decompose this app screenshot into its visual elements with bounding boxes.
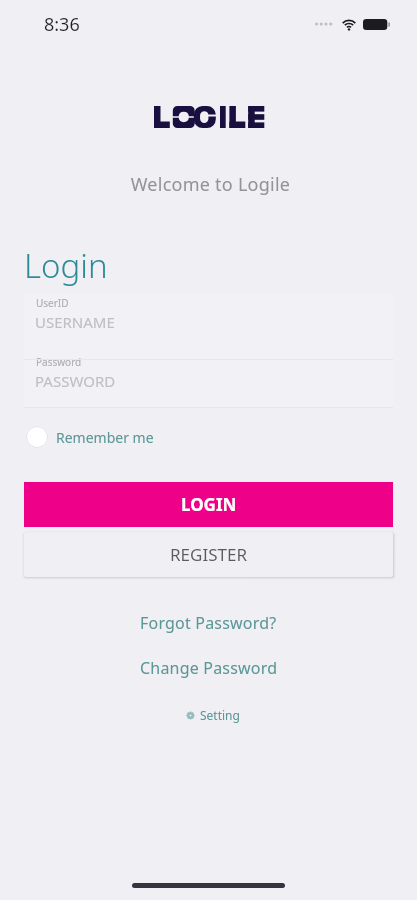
button[interactable]: UserID <box>24 294 393 353</box>
button[interactable]: LOGIN <box>24 482 393 527</box>
staticText: Login <box>24 243 108 288</box>
staticText: USERNAME <box>35 312 115 332</box>
staticText: 8:36 <box>44 12 80 37</box>
staticText: Forgot Password? <box>140 612 277 634</box>
staticText: Change Password <box>140 657 278 679</box>
button[interactable]: Change Password <box>130 653 288 683</box>
staticText: PASSWORD <box>35 371 116 391</box>
staticText: REGISTER <box>170 543 247 566</box>
button[interactable]: REGISTER <box>24 532 393 577</box>
staticText: Password <box>36 355 82 369</box>
staticText: Welcome to Logile <box>2 172 417 197</box>
staticText: LOGIN <box>181 493 237 516</box>
staticText: UserID <box>36 296 69 310</box>
button[interactable]: Remember me <box>26 426 154 448</box>
button[interactable]: Password <box>24 353 393 408</box>
button[interactable]: Settings <box>179 703 248 727</box>
staticText: Setting <box>200 707 240 723</box>
staticText: Remember me <box>56 428 154 447</box>
button[interactable]: Forgot Password? <box>130 608 287 638</box>
other: Settings <box>187 712 194 719</box>
